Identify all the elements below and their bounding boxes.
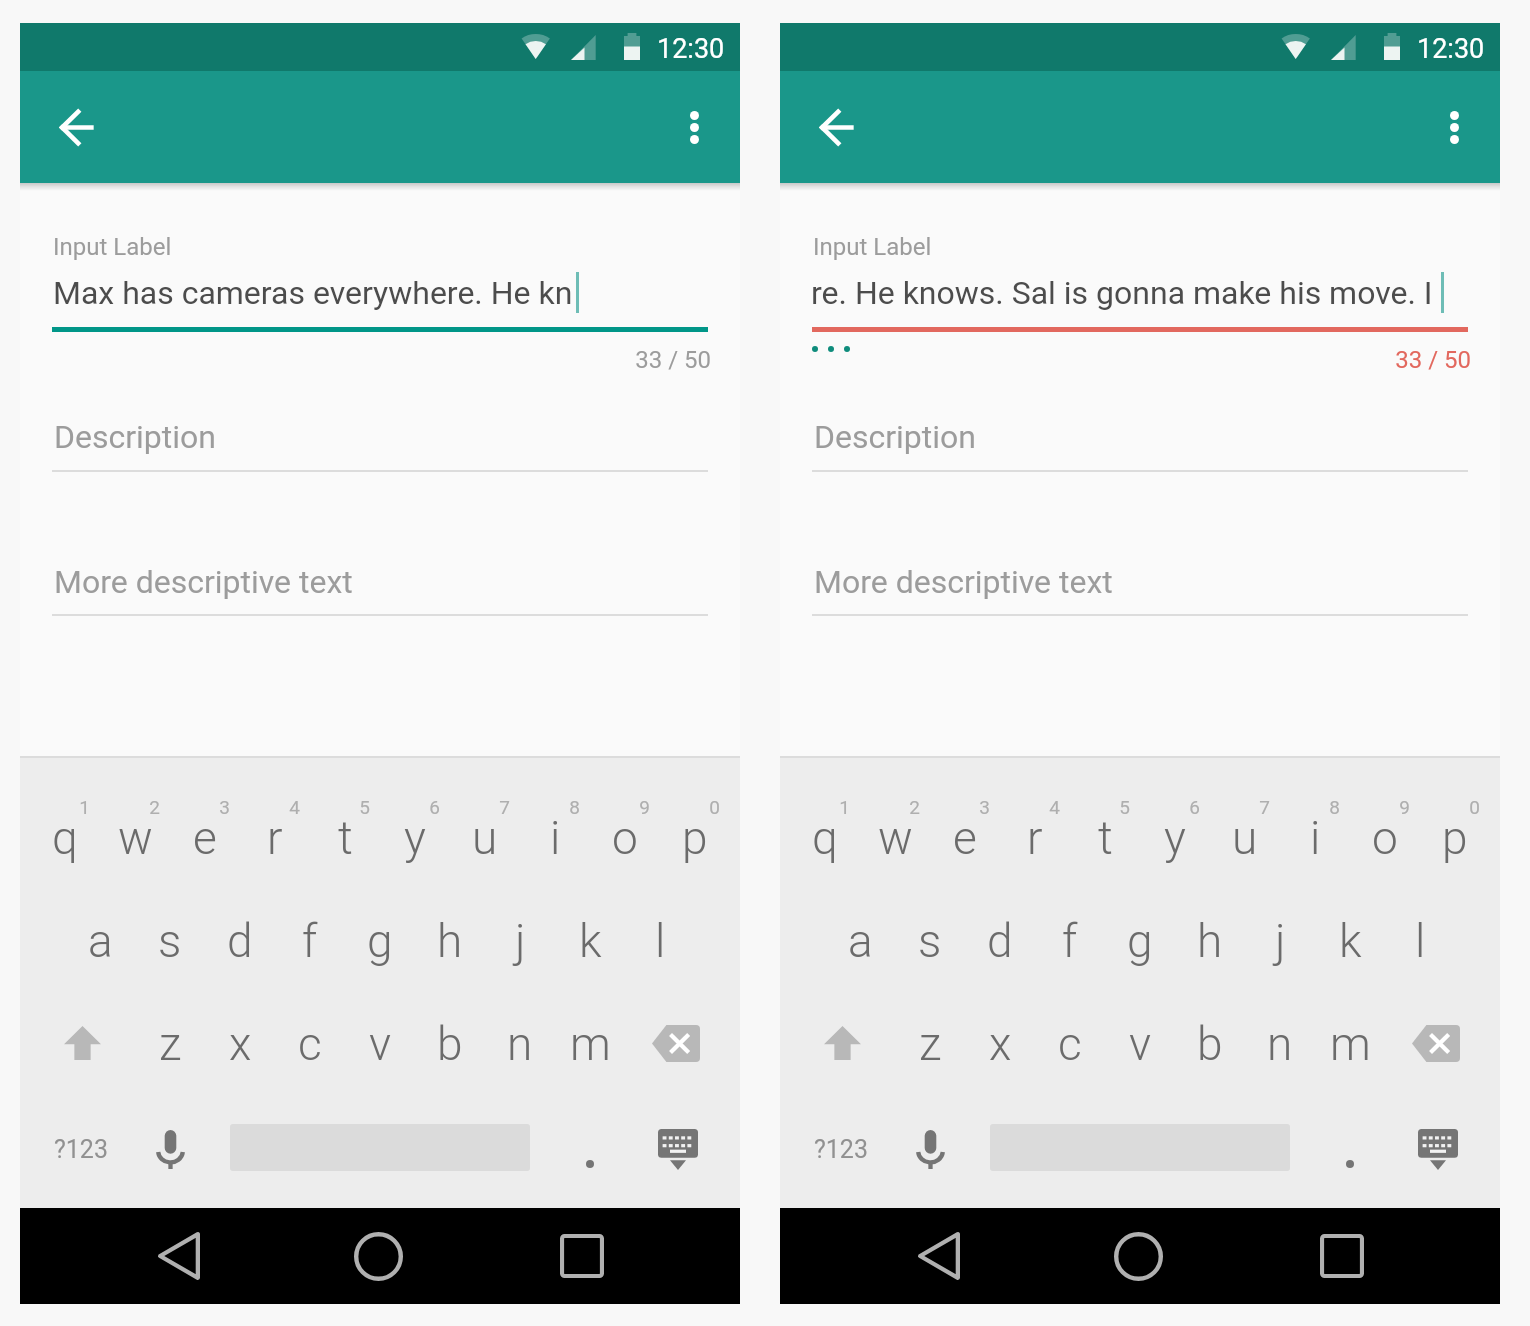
button[interactable]: q bbox=[30, 800, 100, 876]
staticText: n bbox=[507, 1017, 533, 1071]
button[interactable]: b bbox=[415, 1006, 485, 1082]
button[interactable]: Voice input bbox=[895, 1113, 965, 1185]
staticText: Description bbox=[814, 418, 976, 456]
button[interactable]: o bbox=[590, 800, 660, 876]
button[interactable]: x bbox=[965, 1006, 1035, 1082]
button[interactable]: u bbox=[450, 800, 520, 876]
button[interactable]: Backspace bbox=[1383, 1007, 1488, 1079]
staticText: g bbox=[367, 914, 393, 968]
staticText: w bbox=[118, 811, 153, 865]
button[interactable]: Shift bbox=[30, 1007, 135, 1078]
button[interactable]: p bbox=[1420, 800, 1490, 876]
button[interactable]: c bbox=[1035, 1006, 1105, 1082]
button[interactable]: Voice input bbox=[135, 1113, 205, 1185]
button[interactable]: r bbox=[240, 800, 310, 876]
button[interactable]: ?123 bbox=[30, 1113, 135, 1185]
button[interactable]: ?123 bbox=[790, 1113, 895, 1185]
button[interactable]: a bbox=[825, 903, 895, 979]
staticText: i bbox=[1310, 811, 1321, 865]
staticText: e bbox=[193, 811, 217, 865]
staticText: 9 bbox=[590, 796, 650, 818]
button[interactable]: o bbox=[1350, 800, 1420, 876]
button[interactable]: a bbox=[65, 903, 135, 979]
staticText: k bbox=[1339, 914, 1362, 968]
staticText: t bbox=[338, 811, 353, 865]
button[interactable]: h bbox=[415, 903, 485, 979]
button[interactable]: Back bbox=[42, 92, 112, 162]
button[interactable]: p bbox=[660, 800, 730, 876]
button[interactable]: Recents bbox=[547, 1221, 617, 1291]
button[interactable]: c bbox=[275, 1006, 345, 1082]
staticText: v bbox=[369, 1017, 392, 1071]
button[interactable]: g bbox=[1105, 903, 1175, 979]
staticText: b bbox=[437, 1017, 463, 1071]
button[interactable]: Back bbox=[144, 1221, 214, 1291]
staticText: f bbox=[302, 914, 318, 968]
button[interactable]: n bbox=[1245, 1006, 1315, 1082]
button[interactable]: n bbox=[485, 1006, 555, 1082]
button[interactable]: m bbox=[555, 1006, 625, 1082]
button[interactable]: t bbox=[310, 800, 380, 876]
button[interactable]: d bbox=[205, 903, 275, 979]
button[interactable]: More options bbox=[659, 92, 729, 162]
button[interactable]: Home bbox=[343, 1221, 413, 1291]
button[interactable]: Backspace bbox=[623, 1007, 728, 1079]
button[interactable]: z bbox=[895, 1006, 965, 1082]
staticText: 3 bbox=[170, 796, 230, 818]
button[interactable]: Period bbox=[1315, 1113, 1385, 1185]
button[interactable]: Hide keyboard bbox=[1385, 1113, 1490, 1185]
button[interactable]: w bbox=[860, 800, 930, 876]
button[interactable]: j bbox=[485, 903, 555, 979]
button[interactable]: v bbox=[345, 1006, 415, 1082]
staticText: c bbox=[1058, 1017, 1082, 1071]
button[interactable]: Recents bbox=[1307, 1221, 1377, 1291]
button[interactable]: More options bbox=[1419, 92, 1489, 162]
staticText: q bbox=[812, 811, 838, 865]
button[interactable]: u bbox=[1210, 800, 1280, 876]
staticText: 3 bbox=[930, 796, 990, 818]
button[interactable]: l bbox=[625, 903, 695, 979]
button[interactable]: q bbox=[790, 800, 860, 876]
button[interactable]: x bbox=[205, 1006, 275, 1082]
button[interactable]: Shift bbox=[790, 1007, 895, 1078]
button[interactable]: r bbox=[1000, 800, 1070, 876]
button[interactable]: e bbox=[170, 800, 240, 876]
button[interactable]: Period bbox=[555, 1113, 625, 1185]
button[interactable]: Hide keyboard bbox=[625, 1113, 730, 1185]
staticText: r bbox=[1027, 811, 1043, 865]
button[interactable]: Back bbox=[802, 92, 872, 162]
button[interactable]: h bbox=[1175, 903, 1245, 979]
button[interactable]: s bbox=[135, 903, 205, 979]
button[interactable]: Home bbox=[1103, 1221, 1173, 1291]
button[interactable]: w bbox=[100, 800, 170, 876]
button[interactable]: z bbox=[135, 1006, 205, 1082]
button[interactable]: y bbox=[1140, 800, 1210, 876]
staticText: p bbox=[682, 811, 708, 865]
button[interactable]: t bbox=[1070, 800, 1140, 876]
button[interactable]: k bbox=[555, 903, 625, 979]
staticText: 2 bbox=[860, 796, 920, 818]
staticText: i bbox=[550, 811, 561, 865]
button[interactable]: g bbox=[345, 903, 415, 979]
button[interactable]: m bbox=[1315, 1006, 1385, 1082]
button[interactable]: d bbox=[965, 903, 1035, 979]
button[interactable]: l bbox=[1385, 903, 1455, 979]
button[interactable]: b bbox=[1175, 1006, 1245, 1082]
staticText: g bbox=[1127, 914, 1153, 968]
button[interactable]: k bbox=[1315, 903, 1385, 979]
staticText: m bbox=[570, 1017, 611, 1071]
button[interactable]: i bbox=[520, 800, 590, 876]
staticText: 4 bbox=[1000, 796, 1060, 818]
button[interactable]: s bbox=[895, 903, 965, 979]
button[interactable]: e bbox=[930, 800, 1000, 876]
button[interactable]: i bbox=[1280, 800, 1350, 876]
button[interactable]: y bbox=[380, 800, 450, 876]
button[interactable]: f bbox=[275, 903, 345, 979]
button[interactable]: f bbox=[1035, 903, 1105, 979]
button[interactable]: v bbox=[1105, 1006, 1175, 1082]
button[interactable]: Back bbox=[904, 1221, 974, 1291]
staticText: q bbox=[52, 811, 78, 865]
button[interactable]: j bbox=[1245, 903, 1315, 979]
